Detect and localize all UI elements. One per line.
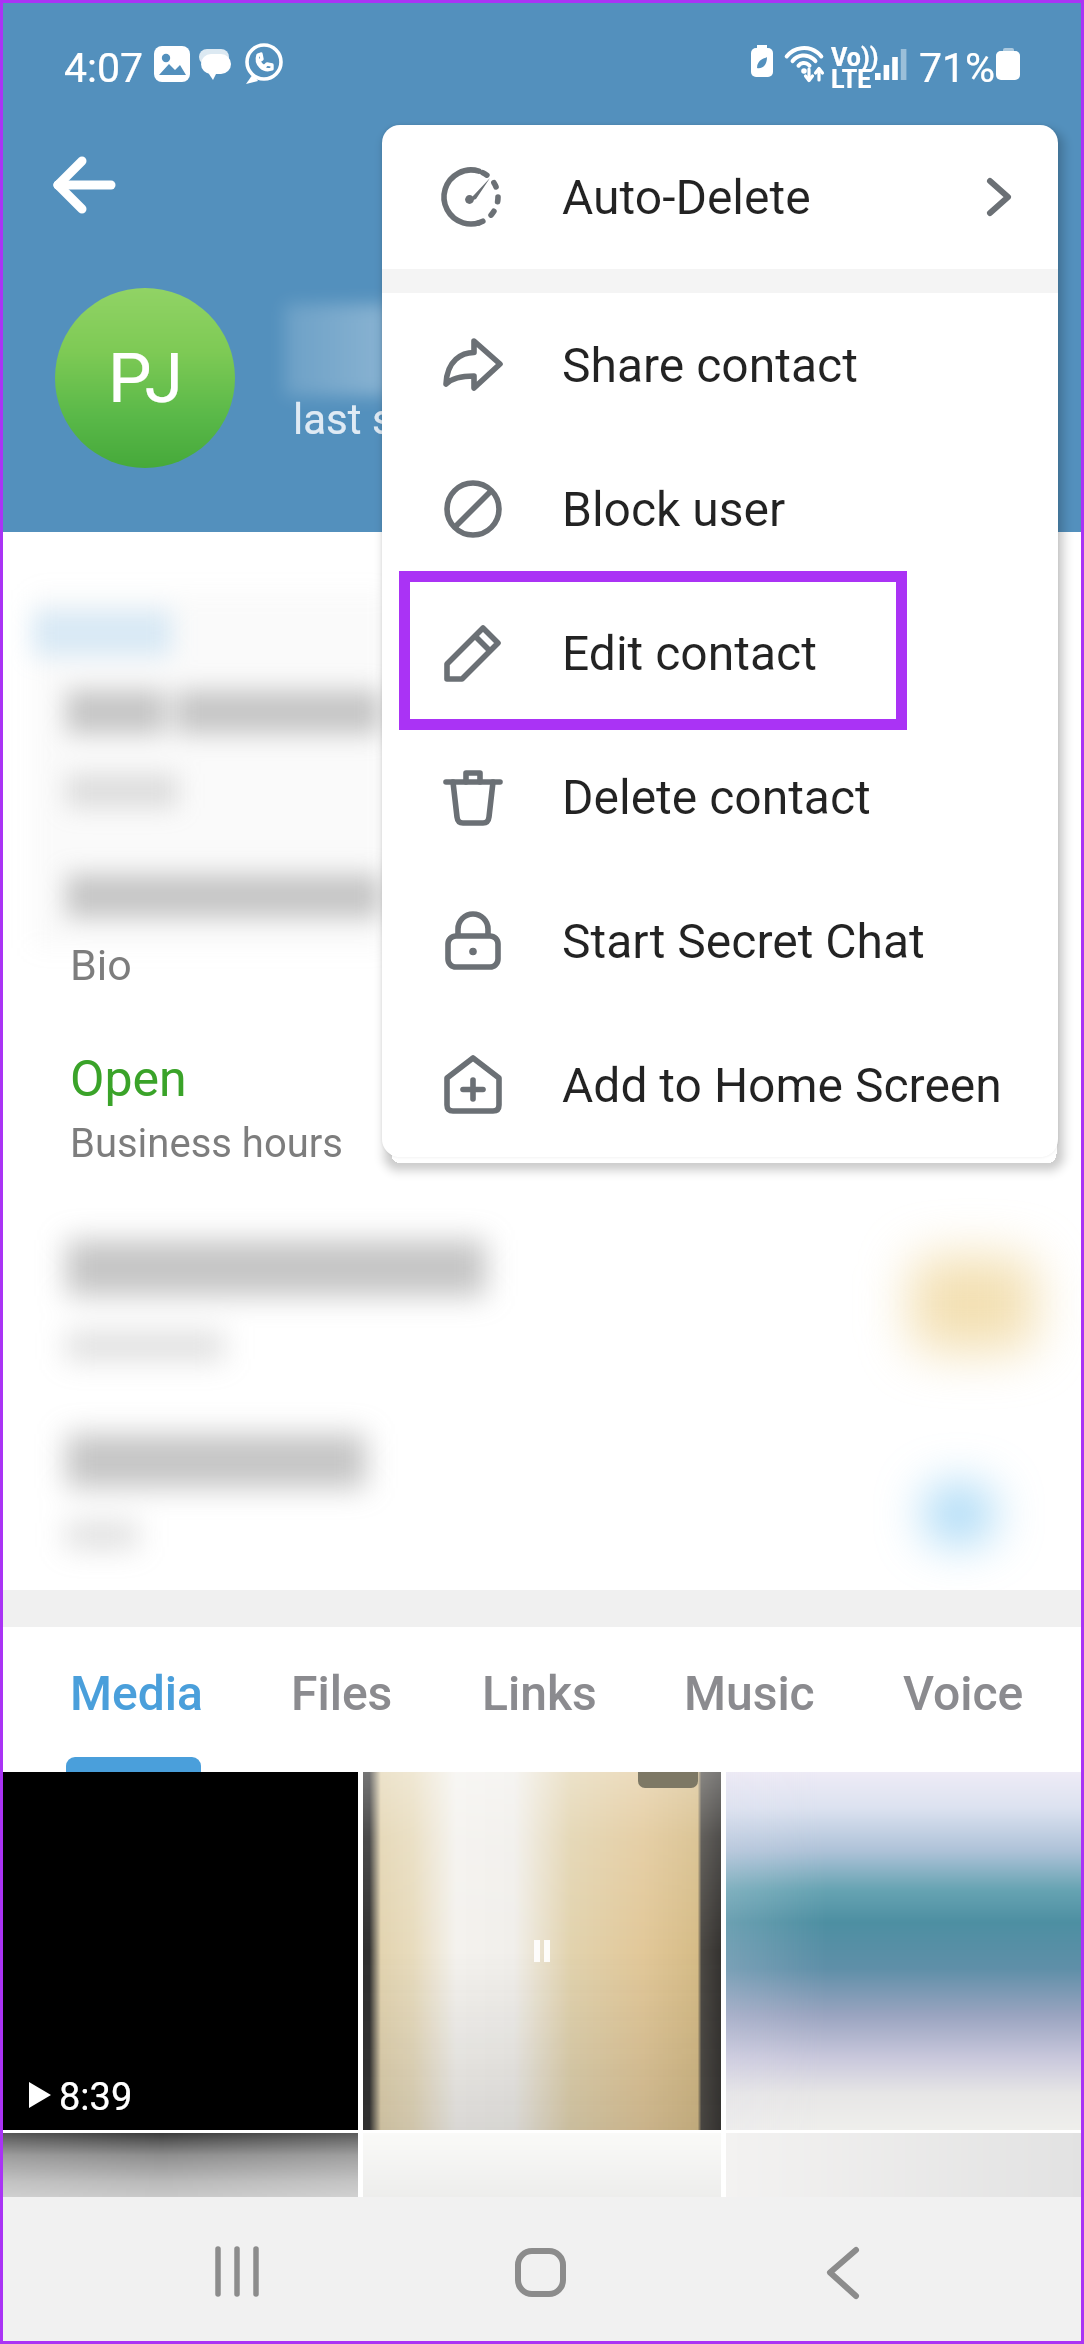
staticText: Vo)) <box>831 43 879 72</box>
staticText: Voice <box>903 1665 1024 1721</box>
staticText: Business hours <box>70 1120 343 1167</box>
button[interactable]: Recent apps <box>166 2199 308 2341</box>
staticText: 4:07 <box>64 44 144 92</box>
button[interactable]: Back <box>770 2199 912 2341</box>
staticText: Media <box>70 1665 203 1721</box>
staticText: 71% <box>919 44 996 92</box>
button[interactable]: Files <box>291 1665 393 1721</box>
button[interactable]: Add to Home Screen <box>382 1013 1058 1157</box>
staticText: last se <box>293 395 416 444</box>
staticText: Bio <box>70 940 132 990</box>
button[interactable]: Share contact <box>382 293 1058 437</box>
button[interactable]: Back <box>35 135 135 235</box>
staticText: Delete contact <box>562 769 871 825</box>
staticText: Block user <box>562 481 786 537</box>
button[interactable]: Home <box>471 2199 613 2341</box>
button[interactable]: Media <box>70 1665 203 1721</box>
staticText: Share contact <box>562 337 858 393</box>
button[interactable]: Auto-Delete <box>382 125 1058 269</box>
staticText: Add to Home Screen <box>562 1057 1002 1113</box>
staticText: Start Secret Chat <box>562 913 925 969</box>
staticText: Auto-Delete <box>562 169 811 225</box>
button[interactable]: Start Secret Chat <box>382 869 1058 1013</box>
staticText: Music <box>684 1665 815 1721</box>
staticText: Links <box>482 1665 597 1721</box>
button[interactable]: Edit contact <box>382 581 1058 725</box>
staticText: Open <box>70 1050 187 1109</box>
staticText: LTE <box>831 65 872 94</box>
staticText: 8:39 <box>59 2075 133 2120</box>
button[interactable]: Links <box>482 1665 597 1721</box>
button[interactable]: Music <box>684 1665 815 1721</box>
staticText: PJ <box>108 338 183 419</box>
button[interactable]: Block user <box>382 437 1058 581</box>
button[interactable]: Delete contact <box>382 725 1058 869</box>
staticText: Edit contact <box>562 625 817 681</box>
button[interactable]: Voice <box>903 1665 1024 1721</box>
button[interactable]: PJ <box>55 288 235 468</box>
staticText: Files <box>291 1665 393 1721</box>
